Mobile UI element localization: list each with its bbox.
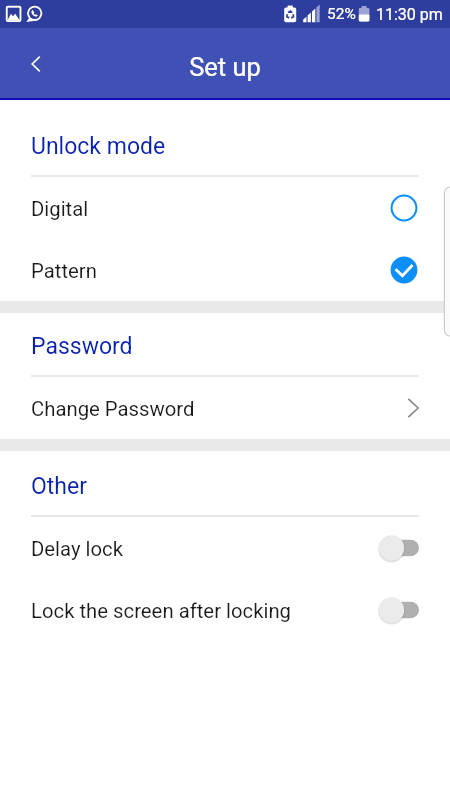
staticText: Digital (31, 197, 89, 221)
staticText: 11:30 pm (376, 5, 443, 24)
staticText: Set up (189, 52, 261, 82)
staticText: Lock the screen after locking (31, 599, 292, 623)
staticText: Unlock mode (31, 133, 166, 160)
button[interactable]: Delay lock (0, 517, 450, 579)
staticText: Change Password (31, 397, 195, 421)
button[interactable]: Change Password (0, 377, 450, 439)
staticText: Password (31, 333, 133, 360)
staticText: Pattern (31, 259, 97, 283)
staticText: Delay lock (31, 537, 123, 561)
button[interactable]: Pattern (0, 239, 450, 301)
staticText: Other (31, 473, 88, 500)
button[interactable]: Digital (0, 177, 450, 239)
button[interactable]: Back (12, 40, 60, 88)
button[interactable]: Lock the screen after locking (0, 579, 450, 641)
staticText: 52% (327, 5, 356, 23)
